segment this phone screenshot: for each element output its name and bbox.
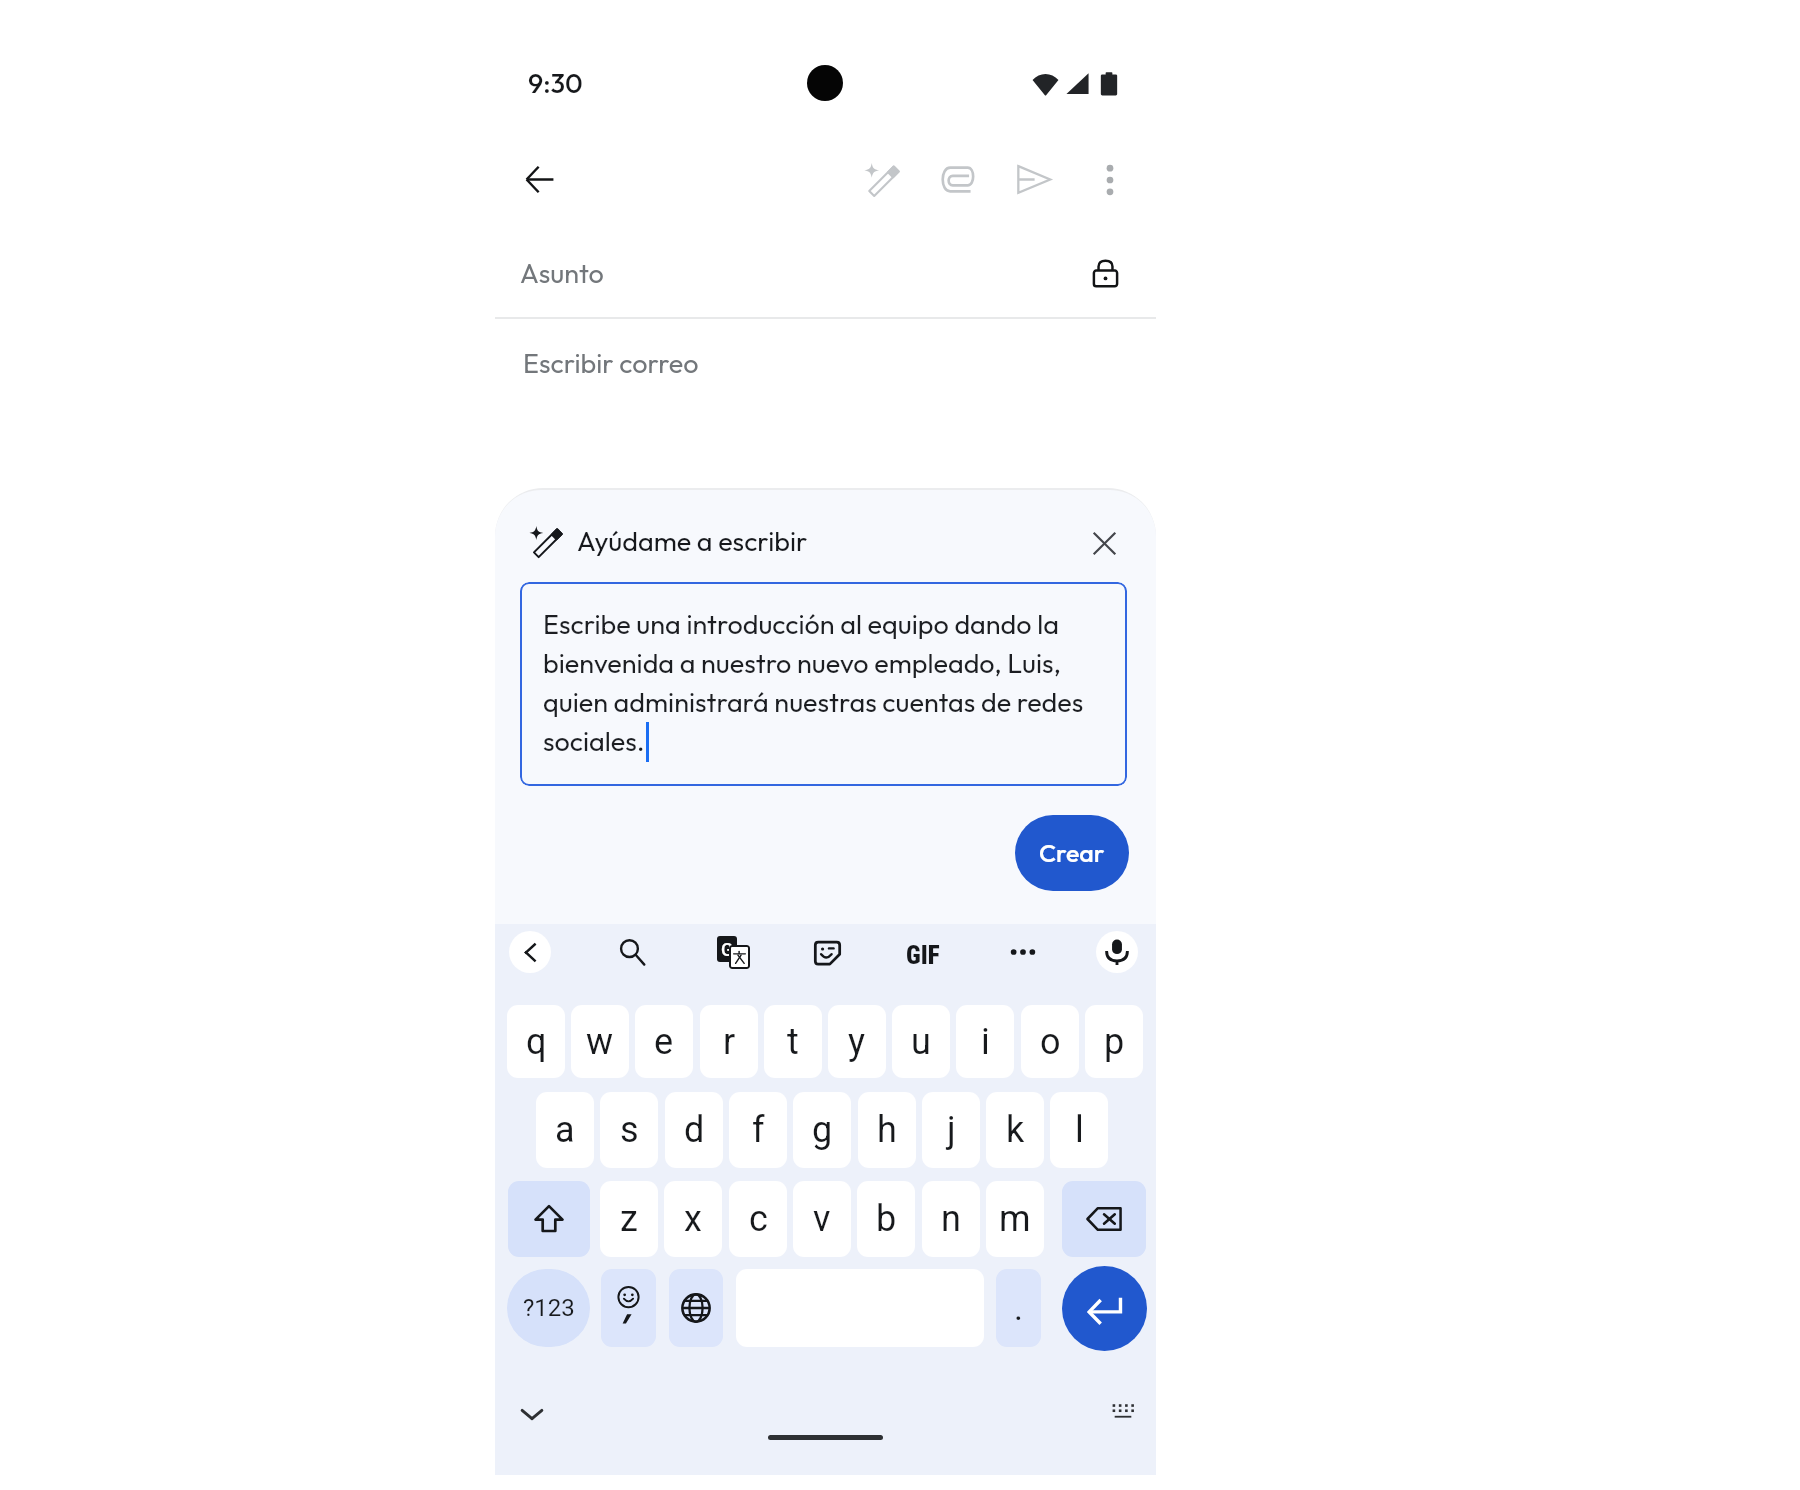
button[interactable]: h — [858, 1092, 916, 1168]
button[interactable]: More — [1002, 931, 1044, 973]
button[interactable]: Help me write — [849, 147, 914, 212]
button[interactable]: t — [764, 1005, 822, 1078]
button[interactable]: b — [857, 1181, 915, 1257]
button[interactable]: Search — [611, 931, 653, 973]
staticText: c — [749, 1198, 768, 1240]
button[interactable]: w — [571, 1005, 629, 1078]
staticText: a — [555, 1109, 575, 1151]
staticText: k — [1006, 1109, 1025, 1151]
staticText: Asunto — [520, 256, 604, 290]
staticText: j — [947, 1109, 956, 1151]
button[interactable]: f — [729, 1092, 787, 1168]
staticText: Escribe una introducción al equipo dando… — [543, 607, 1103, 758]
button[interactable]: r — [700, 1005, 758, 1078]
staticText: r — [723, 1021, 736, 1063]
staticText: . — [1014, 1288, 1023, 1328]
staticText: q — [526, 1021, 547, 1063]
button[interactable]: . — [996, 1269, 1041, 1347]
staticText: x — [684, 1198, 702, 1240]
staticText: v — [813, 1198, 831, 1240]
button[interactable]: p — [1085, 1005, 1143, 1078]
staticText: b — [876, 1198, 897, 1240]
button[interactable]: k — [986, 1092, 1044, 1168]
staticText: G — [721, 939, 734, 960]
button[interactable]: v — [793, 1181, 851, 1257]
button[interactable]: Escribe una introducción al equipo dando… — [520, 582, 1127, 786]
button[interactable]: Confidential mode — [1078, 246, 1133, 301]
button[interactable]: Attach file — [924, 147, 989, 212]
staticText: ?123 — [523, 1294, 575, 1322]
button[interactable]: j — [922, 1092, 980, 1168]
staticText: g — [812, 1109, 833, 1151]
button[interactable]: i — [956, 1005, 1014, 1078]
staticText: l — [1075, 1109, 1084, 1151]
button[interactable]: d — [665, 1092, 723, 1168]
staticText: p — [1104, 1021, 1125, 1063]
button[interactable]: Translate — [712, 931, 754, 973]
staticText: e — [654, 1021, 674, 1063]
staticText: n — [941, 1198, 961, 1240]
staticText: w — [586, 1021, 614, 1063]
button[interactable]: e — [635, 1005, 693, 1078]
button[interactable]: m — [986, 1181, 1044, 1257]
button[interactable]: Hide keyboard — [509, 1391, 555, 1437]
button[interactable]: q — [507, 1005, 565, 1078]
button[interactable]: g — [793, 1092, 851, 1168]
button[interactable]: Previous — [509, 931, 551, 973]
button[interactable]: Backspace — [1062, 1181, 1146, 1257]
button[interactable]: n — [922, 1181, 980, 1257]
button[interactable]: More options — [1077, 147, 1142, 212]
button[interactable]: y — [828, 1005, 886, 1078]
button[interactable]: Close — [1079, 518, 1129, 568]
button[interactable]: x — [664, 1181, 722, 1257]
staticText: u — [911, 1021, 931, 1063]
button[interactable]: s — [600, 1092, 658, 1168]
staticText: y — [848, 1021, 866, 1063]
button[interactable]: o — [1021, 1005, 1079, 1078]
staticText: o — [1040, 1021, 1061, 1063]
staticText: m — [999, 1198, 1031, 1240]
button[interactable]: Emoji — [601, 1269, 656, 1347]
button[interactable]: Back — [507, 147, 572, 212]
staticText: i — [981, 1021, 990, 1063]
staticText: GIF — [906, 941, 940, 970]
staticText: d — [684, 1109, 705, 1151]
button[interactable]: Switch keyboard — [1100, 1388, 1146, 1434]
button[interactable]: l — [1050, 1092, 1108, 1168]
button[interactable]: GIF — [902, 934, 944, 976]
staticText: Escribir correo — [523, 346, 699, 380]
staticText: f — [752, 1109, 765, 1151]
button[interactable]: u — [892, 1005, 950, 1078]
staticText: Crear — [1039, 837, 1105, 869]
button[interactable]: Shift — [508, 1181, 590, 1257]
button[interactable]: Crear — [1015, 815, 1129, 891]
button[interactable]: Change language — [669, 1269, 723, 1347]
button[interactable]: a — [536, 1092, 594, 1168]
staticText: h — [877, 1109, 897, 1151]
button[interactable]: Stickers — [806, 931, 848, 973]
staticText: t — [787, 1021, 799, 1063]
staticText: 9:30 — [528, 66, 583, 100]
button[interactable]: c — [729, 1181, 787, 1257]
button[interactable]: Enter — [1062, 1266, 1147, 1351]
staticText: Ayúdame a escribir — [577, 524, 808, 558]
button[interactable]: Voice input — [1096, 931, 1138, 973]
staticText: s — [620, 1109, 639, 1151]
button[interactable]: z — [600, 1181, 658, 1257]
button[interactable]: Send — [1001, 147, 1066, 212]
button[interactable]: Symbols — [507, 1269, 590, 1347]
staticText: z — [620, 1198, 638, 1240]
